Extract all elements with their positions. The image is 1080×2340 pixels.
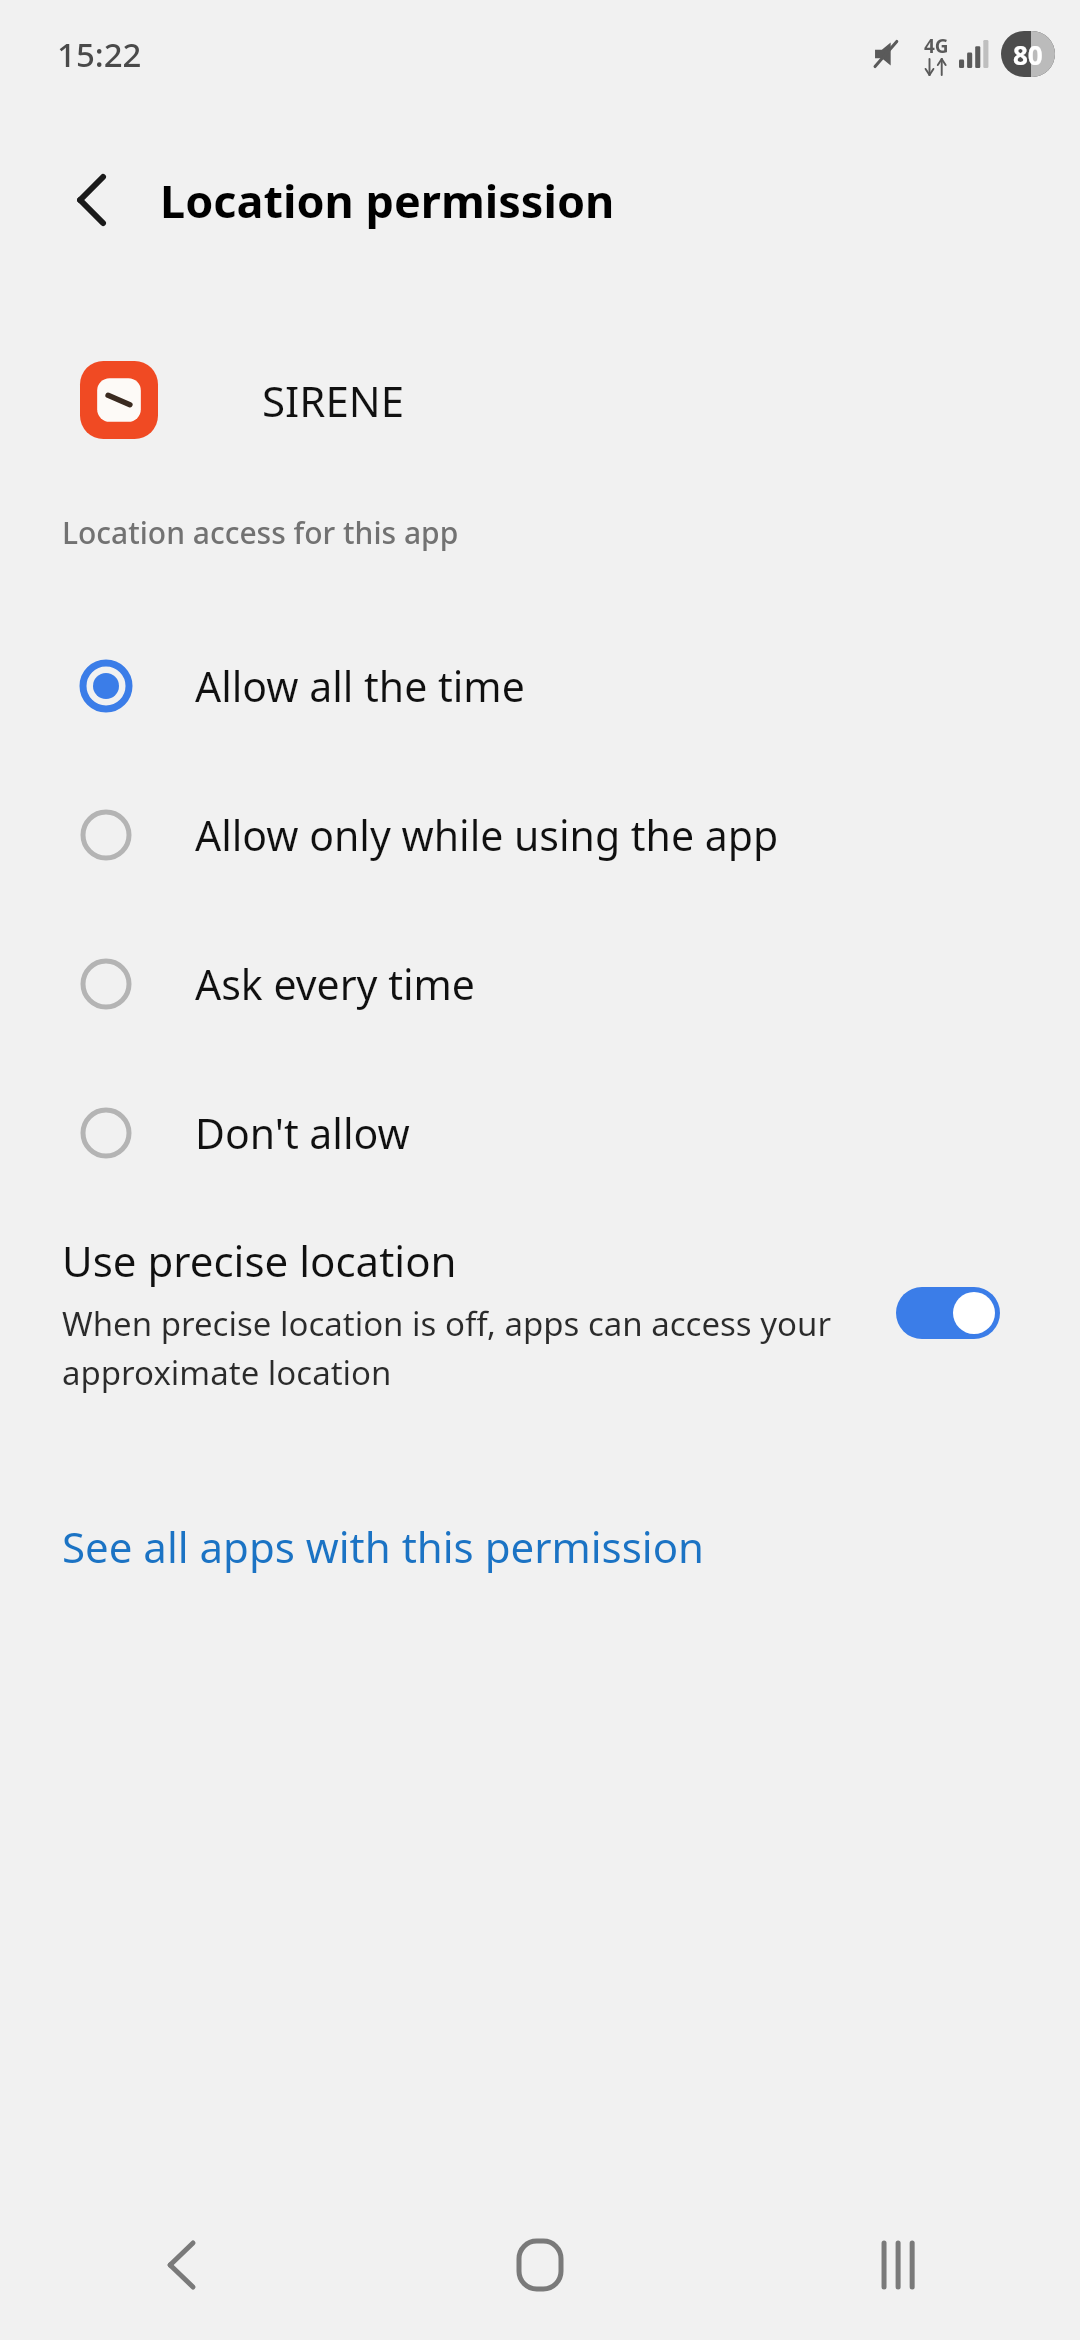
staticText: Location access for this app [62,512,459,553]
staticText: Allow all the time [195,658,525,714]
button[interactable]: Recents [720,2190,1080,2340]
staticText: 15:22 [57,32,142,77]
staticText: SIRENE [262,372,405,429]
staticText: Use precise location [62,1232,457,1289]
staticText: Don't allow [195,1105,410,1161]
button[interactable]: Allow only while using the app [0,760,1080,909]
button[interactable]: Don't allow [0,1058,1080,1207]
button[interactable]: Back [0,2190,360,2340]
staticText: Allow only while using the app [195,807,779,863]
staticText: Ask every time [195,956,475,1012]
staticText: When precise location is off, apps can a… [62,1301,872,1394]
staticText: 4G [924,33,949,59]
button[interactable]: Ask every time [0,909,1080,1058]
staticText: 80 [1013,37,1043,72]
button[interactable]: SIRENE [0,355,1080,445]
button[interactable]: Allow all the time [0,611,1080,760]
button[interactable]: Home [360,2190,720,2340]
staticText: Location permission [160,170,615,231]
button[interactable]: See all apps with this permission [0,1498,1080,1594]
staticText: See all apps with this permission [62,1518,705,1575]
button[interactable]: Use precise location toggle [896,1287,1000,1339]
button[interactable]: Back [62,172,118,228]
button[interactable]: Use precise location [0,1232,1080,1394]
